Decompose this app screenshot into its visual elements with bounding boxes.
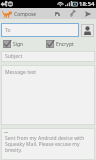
button[interactable]: Sign <box>3 40 24 48</box>
button[interactable]: To <box>2 24 78 36</box>
button[interactable]: Save draft <box>50 8 65 19</box>
button[interactable]: Compose <box>0 10 37 18</box>
staticText: To <box>5 27 11 34</box>
button[interactable]: Pick contact <box>82 25 93 36</box>
staticText: Sent from my Android device with Squeaky… <box>5 135 92 154</box>
staticText: Message text <box>5 69 37 76</box>
staticText: 18:54 <box>79 0 95 8</box>
button[interactable]: Sent from my Android device with Squeaky… <box>2 129 94 159</box>
button[interactable]: Encrypt <box>46 40 74 48</box>
button[interactable]: Subject <box>2 52 94 61</box>
staticText: Subject <box>5 53 23 60</box>
button[interactable]: Attach file <box>65 8 80 19</box>
button[interactable]: Message text <box>2 66 94 124</box>
button[interactable]: Send <box>80 8 95 19</box>
staticText: Sign <box>13 41 24 48</box>
staticText: Encrypt <box>56 41 74 48</box>
staticText: Compose <box>14 11 37 18</box>
